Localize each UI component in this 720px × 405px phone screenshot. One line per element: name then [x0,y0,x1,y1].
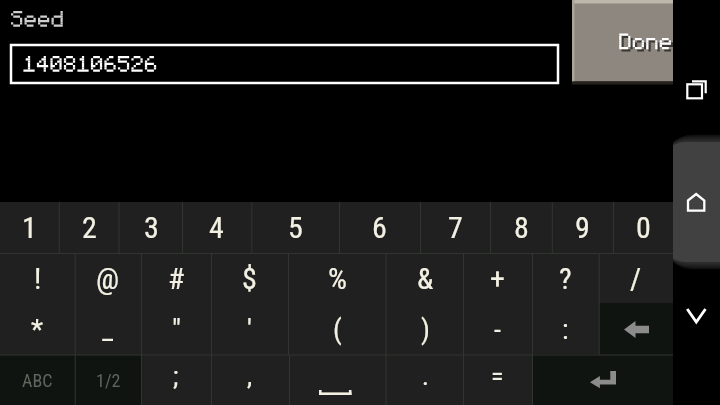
button[interactable]: 1/2 [75,355,141,405]
staticText: ) [421,313,430,346]
button[interactable]: Home [673,179,720,226]
staticText: $ [242,261,257,296]
staticText: & [417,261,434,296]
staticText: ; [173,361,179,391]
staticText: 8 [514,210,529,245]
staticText: _ [102,313,114,346]
staticText: * [31,313,44,346]
button[interactable]: ? [532,253,599,355]
staticText: " [172,313,181,346]
button[interactable]: 1 [0,202,59,253]
staticText: 1/2 [96,370,121,391]
staticText: 1 [22,210,37,245]
button[interactable]: Space [289,355,386,405]
button[interactable]: Enter [532,354,673,405]
button[interactable]: ABC [0,355,75,405]
button[interactable]: = [463,355,532,405]
staticText: 3 [144,210,159,245]
staticText: , [247,361,253,391]
staticText: ' [247,313,252,346]
button[interactable]: ! [0,253,75,355]
staticText: 0 [636,210,651,245]
button[interactable]: 2 [59,202,119,253]
button[interactable] [572,0,673,84]
staticText: @ [96,261,120,296]
button[interactable]: Backspace [599,303,673,355]
button[interactable]: 7 [420,202,490,253]
staticText: : [562,313,569,346]
staticText: ? [559,261,572,296]
button[interactable]: & [386,253,464,355]
button[interactable]: 5 [251,202,339,253]
button[interactable]: Hide keyboard [673,292,720,339]
staticText: ( [333,313,342,346]
staticText: 7 [448,210,463,245]
button[interactable]: 0 [613,202,673,253]
button[interactable]: ; [141,355,211,405]
button[interactable]: 9 [552,202,613,253]
button[interactable]: . [386,355,464,405]
button[interactable]: % [288,253,386,355]
staticText: 2 [82,210,97,245]
staticText: ABC [22,370,53,391]
button[interactable]: # [141,253,211,355]
staticText: 5 [288,210,303,245]
staticText: ! [34,261,42,296]
button[interactable]: @ [75,253,141,355]
button[interactable]: + [463,253,532,355]
staticText: = [491,361,504,391]
button[interactable]: , [211,355,289,405]
button[interactable]: Recents [673,67,720,114]
button[interactable]: 6 [339,202,420,253]
staticText: / [630,261,642,296]
staticText: 6 [372,210,387,245]
button[interactable]: 3 [119,202,183,253]
staticText: 9 [575,210,590,245]
staticText: . [422,361,429,391]
staticText: % [328,261,347,296]
staticText: - [494,313,501,346]
button[interactable]: / [599,253,673,355]
staticText: 4 [209,210,224,245]
staticText: + [490,261,505,296]
button[interactable]: 4 [182,202,251,253]
button[interactable]: 8 [490,202,552,253]
button[interactable]: $ [211,253,288,355]
staticText: # [168,261,185,296]
